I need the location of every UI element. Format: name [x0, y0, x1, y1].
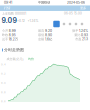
staticText: 0.93: [81, 33, 88, 37]
button[interactable]: News: [73, 21, 79, 27]
staticText: 1.6亿: [45, 37, 52, 41]
staticText: 9.0: [1, 81, 6, 85]
staticText: 总手: [2, 37, 8, 41]
staticText: 8.90: [45, 33, 52, 37]
staticText: 量比: [74, 33, 80, 37]
staticText: 更多: [80, 6, 86, 10]
staticText: 行情: [4, 6, 10, 10]
staticText: 成交额(亿元): [6, 57, 23, 61]
staticText: 金额: [38, 37, 44, 41]
staticText: 市盈: [75, 37, 81, 41]
staticText: +1.34%: [27, 19, 38, 23]
button[interactable]: Add to watchlist: [53, 21, 60, 27]
staticText: 最高: [38, 29, 44, 33]
staticText: +0.12: [17, 19, 25, 23]
staticText: 中国移动: [38, 0, 50, 4]
staticText: 昨收: [2, 33, 8, 37]
staticText: 8.6: [1, 100, 6, 103]
staticText: 1.24%: [79, 29, 88, 33]
button[interactable]: 更多: [77, 5, 89, 11]
staticText: 18.2万: [9, 37, 18, 41]
staticText: 21.3: [82, 37, 88, 41]
staticText: 分时走势图: [4, 47, 24, 52]
staticText: 8.95: [9, 33, 16, 37]
button[interactable]: Alert: [61, 21, 67, 27]
staticText: 均价: [28, 57, 34, 61]
staticText: 9.2: [1, 72, 6, 75]
staticText: 8.99: [9, 29, 16, 33]
staticText: 8.8: [1, 91, 6, 94]
button[interactable]: Trade: [67, 21, 73, 27]
button[interactable]: 行情: [1, 5, 13, 11]
staticText: 今开: [2, 29, 8, 33]
staticText: 2024-05-06: [67, 1, 85, 4]
staticText: 09:41: [4, 1, 12, 4]
button[interactable]: Share: [79, 21, 85, 27]
staticText: 9.20: [45, 29, 52, 33]
staticText: 最低: [38, 33, 44, 37]
staticText: 9.09: [1, 16, 17, 25]
staticText: 上证指数 000001: [2, 12, 26, 15]
staticText: 9.4: [1, 63, 6, 66]
staticText: 换手: [72, 29, 78, 33]
staticText: 06-05 15:00: [64, 12, 82, 15]
